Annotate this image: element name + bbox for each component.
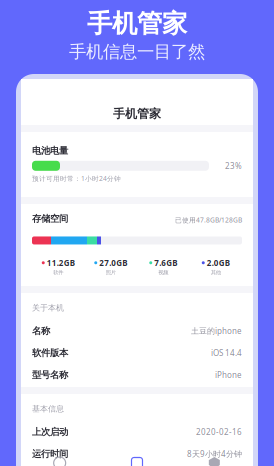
staticText: 手机管家 [87,8,187,39]
staticText: 视频 [158,269,168,276]
button[interactable]: 上次启动 [32,421,242,443]
staticText: 2.0GB [207,257,230,268]
staticText: 11.2GB [47,257,75,268]
staticText: 名称 [32,325,50,337]
button[interactable]: 手机管家 [98,453,176,466]
staticText: 关于本机 [32,303,64,313]
staticText: 软件 [53,269,63,276]
staticText: 基本信息 [32,404,64,414]
staticText: 27.0GB [99,257,127,268]
staticText: 2020-02-16 [196,426,242,437]
staticText: iOS 14.4 [211,347,242,358]
staticText: 预计可用时常：1小时24分钟 [32,174,121,183]
staticText: iPhone [215,369,242,380]
staticText: 存储空间 [32,213,68,224]
staticText: 软件版本 [32,347,68,359]
staticText: 已使用47.8GB/128GB [175,216,242,224]
staticText: 23% [225,160,242,171]
staticText: 上次启动 [32,426,68,438]
button[interactable]: 型号名称 [32,364,242,386]
staticText: 运行时间 [32,448,68,460]
button[interactable]: 运行时间 [32,443,242,465]
staticText: 其他 [211,269,221,276]
staticText: 型号名称 [32,369,68,381]
staticText: 8天9小时4分钟 [187,448,242,459]
staticText: 7.6GB [154,257,177,268]
staticText: 土豆的iphone [191,325,242,336]
button[interactable]: 软件版本 [32,342,242,364]
staticText: 手机管家 [113,106,161,121]
button[interactable]: 我的 [176,453,253,466]
staticText: 电池电量 [32,145,68,156]
button[interactable]: 名称 [32,320,242,342]
button[interactable]: 概览 [21,453,98,466]
staticText: 手机信息一目了然 [69,41,205,62]
staticText: 照片 [106,269,116,276]
